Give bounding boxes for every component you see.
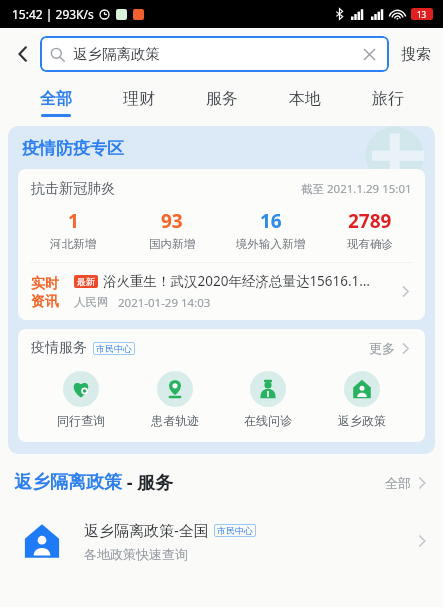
button[interactable]: 本地 — [263, 80, 346, 126]
staticText: 全部 — [385, 475, 411, 491]
button[interactable]: 在线问诊 — [238, 369, 298, 430]
staticText: 患者轨迹 — [151, 413, 199, 428]
button[interactable]: 返乡隔离政策-全国 — [0, 507, 443, 575]
staticText: 旅行 — [372, 89, 404, 109]
button[interactable]: 旅行 — [346, 80, 429, 126]
staticText: 市民中心 — [96, 343, 132, 354]
staticText: 2021-01-29 14:03 — [118, 295, 211, 311]
staticText: 服务 — [206, 89, 238, 109]
staticText: 更多 — [369, 340, 395, 356]
staticText: 返乡隔离政策 — [14, 471, 122, 494]
staticText: 全部 — [40, 89, 72, 109]
button[interactable]: 疫情服务 — [18, 329, 425, 367]
staticText: 返乡政策 — [338, 413, 386, 428]
staticText: 16 — [260, 208, 282, 234]
staticText: 浴火重生！武汉2020年经济总量达15616.1… — [103, 272, 371, 290]
button[interactable]: 实时 — [18, 263, 425, 320]
button[interactable]: 全部 — [14, 80, 97, 126]
button[interactable]: 返乡政策 — [332, 369, 392, 430]
staticText: 疫情服务 — [31, 339, 87, 357]
button[interactable]: 理财 — [97, 80, 180, 126]
staticText: 1 — [68, 208, 79, 234]
button[interactable]: Back — [6, 37, 40, 71]
staticText: 抗击新冠肺炎 — [31, 180, 115, 198]
staticText: 15:42 | 293K/s — [12, 6, 94, 22]
staticText: 返乡隔离政策-全国 — [84, 520, 209, 540]
staticText: 现有确诊 — [347, 237, 393, 251]
staticText: 2789 — [348, 208, 392, 234]
staticText: 在线问诊 — [244, 413, 292, 428]
button[interactable]: 同行查询 — [51, 369, 111, 430]
staticText: 国内新增 — [149, 237, 195, 251]
staticText: 境外输入新增 — [236, 237, 305, 251]
staticText: 截至 2021.1.29 15:01 — [301, 181, 412, 197]
staticText: 资讯 — [31, 293, 59, 309]
staticText: 实时 — [31, 275, 59, 293]
staticText: 93 — [161, 208, 183, 234]
button[interactable]: 服务 — [180, 80, 263, 126]
button[interactable]: 返乡隔离政策 — [40, 36, 389, 72]
button[interactable]: 搜索 — [397, 41, 435, 68]
button[interactable]: 患者轨迹 — [145, 369, 205, 430]
staticText: 13 — [417, 9, 427, 20]
staticText: 人民网 — [74, 295, 109, 309]
staticText: 河北新增 — [50, 237, 96, 251]
staticText: 疫情防疫专区 — [22, 138, 124, 159]
staticText: 各地政策快速查询 — [84, 546, 188, 562]
button[interactable]: 返乡隔离政策 — [0, 468, 443, 497]
staticText: 同行查询 — [57, 413, 105, 428]
staticText: 搜索 — [401, 45, 431, 64]
staticText: 最新 — [77, 276, 95, 287]
staticText: 市民中心 — [217, 525, 253, 536]
staticText: 返乡隔离政策 — [73, 45, 160, 63]
staticText: - 服务 — [122, 470, 174, 495]
staticText: 本地 — [289, 89, 321, 109]
staticText: 理财 — [123, 89, 155, 109]
button[interactable]: Clear — [359, 44, 379, 64]
